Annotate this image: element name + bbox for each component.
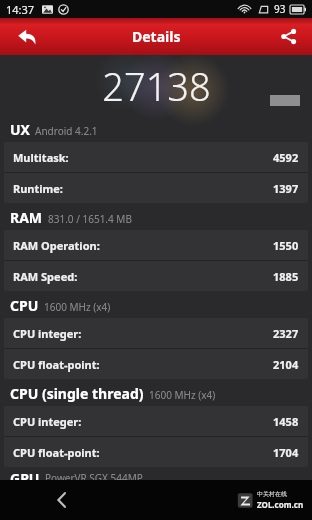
staticText: ZOL.com.cn	[257, 499, 304, 510]
button[interactable]: RAM Operation:	[4, 230, 308, 260]
staticText: 2327	[273, 326, 299, 341]
staticText: 14:37	[6, 2, 35, 17]
staticText: Multitask:	[13, 150, 69, 165]
staticText: Details	[132, 27, 181, 46]
staticText: 1885	[273, 269, 299, 284]
staticText: 1704	[273, 445, 299, 460]
button[interactable]: CPU float-point:	[4, 349, 308, 379]
staticText: RAM Speed:	[13, 269, 78, 284]
staticText: 1397	[273, 181, 299, 196]
staticText: GPU	[10, 469, 40, 480]
staticText: PowerVR SGX 544MP	[45, 471, 143, 480]
staticText: 2104	[273, 357, 299, 372]
staticText: CPU integer:	[13, 414, 82, 429]
button[interactable]: Back	[0, 18, 54, 55]
staticText: Runtime:	[13, 181, 63, 196]
button[interactable]: CPU integer:	[4, 318, 308, 348]
staticText: CPU	[10, 296, 39, 315]
staticText: 4592	[273, 150, 299, 165]
staticText: 1550	[273, 238, 299, 253]
staticText: CPU integer:	[13, 326, 82, 341]
button[interactable]: Runtime:	[4, 173, 308, 203]
staticText: UX	[10, 120, 30, 139]
staticText: CPU float-point:	[13, 357, 100, 372]
staticText: 中关村在线	[257, 490, 287, 498]
staticText: Android 4.2.1	[35, 124, 98, 138]
staticText: 27138	[102, 60, 211, 112]
staticText: RAM	[10, 208, 43, 227]
staticText: CPU (single thread)	[10, 384, 144, 403]
staticText: 1600 MHz (x4)	[149, 388, 216, 402]
button[interactable]: Multitask:	[4, 142, 308, 172]
staticText: 93	[274, 2, 286, 16]
button[interactable]: CPU float-point:	[4, 437, 308, 467]
button[interactable]: CPU integer:	[4, 406, 308, 436]
staticText: RAM Operation:	[13, 238, 100, 253]
button[interactable]: RAM Speed:	[4, 261, 308, 291]
staticText: CPU float-point:	[13, 445, 100, 460]
button[interactable]: Back	[44, 482, 80, 518]
button[interactable]: Share	[264, 18, 312, 55]
staticText: 1600 MHz (x4)	[44, 300, 111, 314]
staticText: 831.0 / 1651.4 MB	[48, 212, 132, 226]
staticText: 1458	[273, 414, 299, 429]
